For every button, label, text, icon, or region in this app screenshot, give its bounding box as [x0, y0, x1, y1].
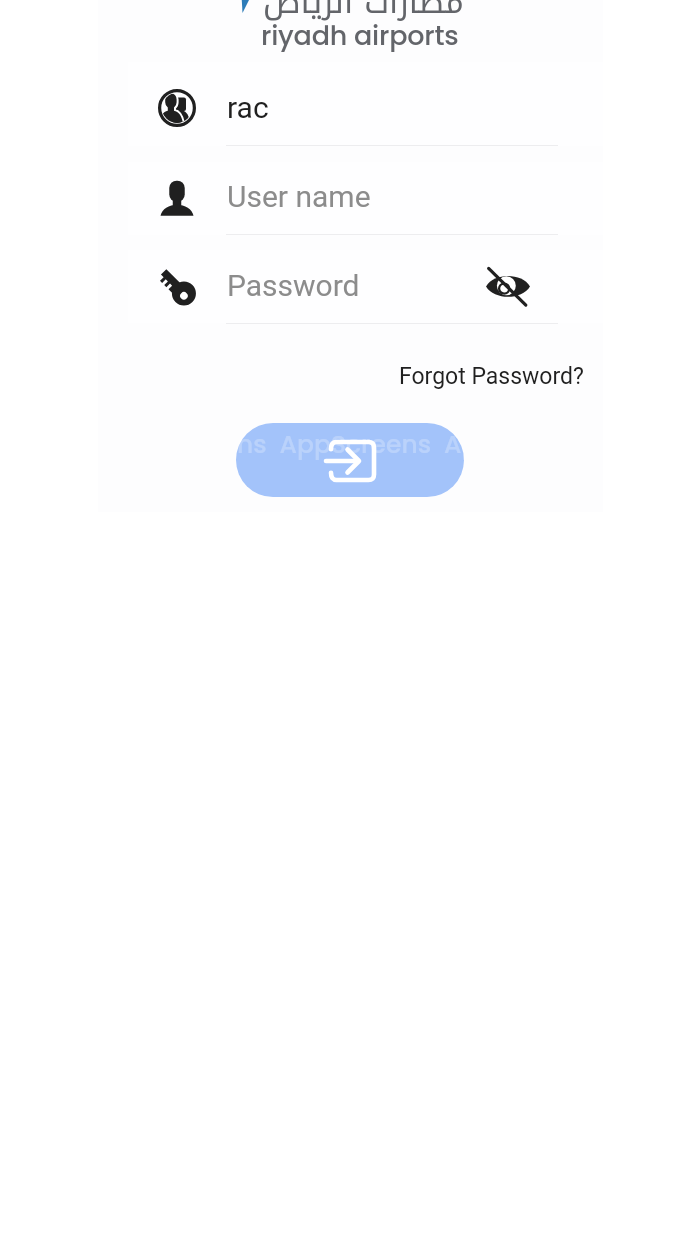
button[interactable]: Password [98, 239, 603, 328]
button[interactable]: Sign in [236, 423, 464, 497]
staticText: Forgot Password? [399, 363, 584, 390]
staticText: rac [227, 90, 269, 125]
staticText: ns AppScreens App [237, 427, 464, 462]
staticText: مطارات الرياض [263, 0, 464, 33]
button[interactable]: User name [98, 150, 603, 239]
button[interactable]: rac [98, 61, 603, 150]
button[interactable]: Toggle password visibility [484, 237, 532, 326]
staticText: Password [227, 268, 360, 303]
button[interactable]: Forgot Password? [399, 353, 584, 399]
staticText: riyadh airports [261, 17, 459, 55]
staticText: User name [227, 179, 371, 214]
